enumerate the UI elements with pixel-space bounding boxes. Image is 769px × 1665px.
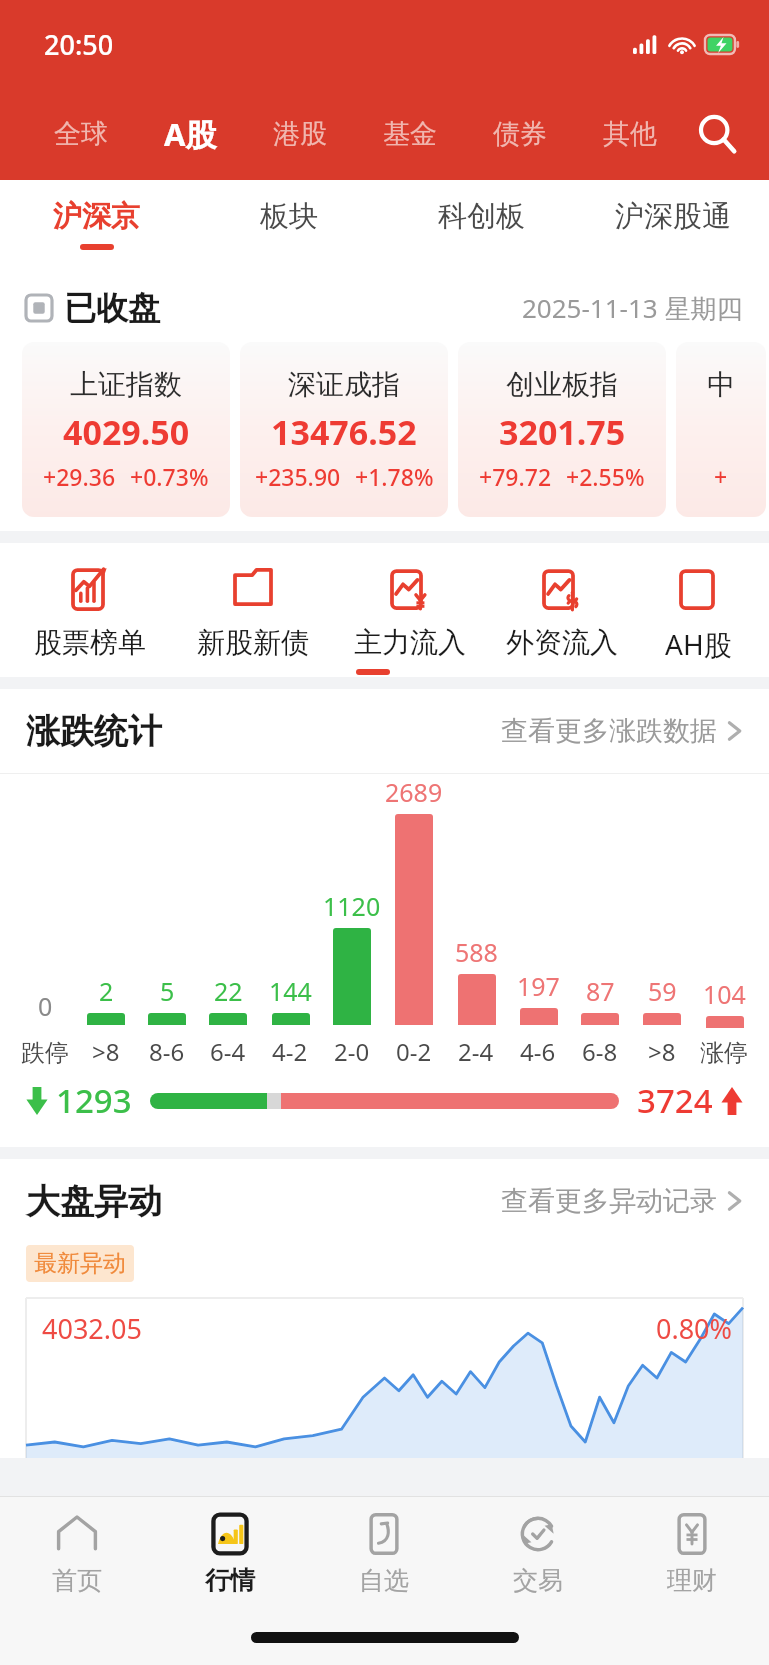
- staticText: 588: [455, 935, 498, 969]
- staticText: 3724: [637, 1078, 713, 1123]
- button[interactable]: 自选: [307, 1497, 461, 1609]
- button[interactable]: 外资流入: [486, 565, 638, 660]
- staticText: 8-6: [149, 1035, 185, 1068]
- staticText: 外资流入: [506, 625, 618, 660]
- staticText: 2: [99, 974, 114, 1008]
- staticText: 1293: [56, 1078, 132, 1123]
- staticText: 自选: [359, 1565, 409, 1596]
- button[interactable]: 港股: [245, 88, 355, 180]
- staticText: 上证指数: [70, 367, 182, 402]
- staticText: 197: [517, 969, 560, 1003]
- staticText: 144: [269, 974, 312, 1008]
- staticText: 查看更多涨跌数据: [501, 714, 717, 748]
- staticText: 行情: [205, 1565, 255, 1596]
- staticText: 其他: [603, 117, 657, 151]
- staticText: 债券: [493, 117, 547, 151]
- staticText: 4-2: [272, 1035, 308, 1068]
- staticText: 1120: [323, 889, 381, 923]
- staticText: 最新异动: [34, 1249, 126, 1278]
- staticText: 沪深京: [53, 198, 140, 235]
- staticText: 股票榜单: [34, 625, 146, 660]
- staticText: 已收盘: [64, 288, 160, 328]
- staticText: 2-4: [458, 1035, 494, 1068]
- staticText: 104: [703, 977, 746, 1011]
- staticText: +29.36: [43, 461, 116, 492]
- staticText: 0.80%: [656, 1310, 733, 1347]
- button[interactable]: 主力流入: [334, 565, 486, 660]
- button[interactable]: 涨跌统计: [26, 689, 743, 773]
- staticText: 基金: [383, 117, 437, 151]
- button[interactable]: 债券: [465, 88, 575, 180]
- staticText: +: [714, 461, 728, 492]
- staticText: 大盘异动: [26, 1180, 162, 1223]
- staticText: 2-0: [334, 1035, 370, 1068]
- staticText: +1.78%: [355, 461, 434, 492]
- staticText: 0: [38, 989, 53, 1023]
- button[interactable]: 创业板指: [458, 342, 666, 517]
- button[interactable]: 中: [676, 342, 766, 517]
- staticText: 新股新债: [197, 625, 309, 660]
- button[interactable]: 全球: [26, 88, 135, 180]
- staticText: 4029.50: [63, 409, 190, 455]
- staticText: 22: [214, 974, 243, 1008]
- staticText: 沪深股通: [615, 198, 731, 235]
- button[interactable]: 深证成指: [240, 342, 448, 517]
- staticText: A股: [164, 113, 217, 155]
- button[interactable]: 4032.05: [26, 1298, 743, 1458]
- button[interactable]: 行情: [153, 1497, 307, 1609]
- staticText: 4032.05: [42, 1310, 142, 1347]
- staticText: 板块: [260, 198, 318, 235]
- button[interactable]: 理财: [615, 1497, 769, 1609]
- staticText: 5: [160, 974, 175, 1008]
- button[interactable]: 交易: [461, 1497, 615, 1609]
- staticText: >8: [648, 1035, 676, 1068]
- button[interactable]: 上证指数: [22, 342, 230, 517]
- staticText: 全球: [54, 117, 108, 151]
- staticText: 查看更多异动记录: [501, 1184, 717, 1218]
- staticText: 涨停: [700, 1038, 748, 1068]
- staticText: +2.55%: [566, 461, 645, 492]
- button[interactable]: 沪深京: [0, 180, 193, 268]
- button[interactable]: Search: [685, 88, 749, 180]
- staticText: 6-4: [210, 1035, 246, 1068]
- staticText: 20:50: [44, 26, 114, 63]
- staticText: 创业板指: [506, 367, 618, 402]
- button[interactable]: AH股: [638, 565, 758, 663]
- staticText: 2689: [385, 775, 443, 809]
- button[interactable]: A股: [135, 88, 245, 180]
- staticText: 理财: [667, 1565, 717, 1596]
- staticText: 13476.52: [271, 409, 417, 455]
- button[interactable]: 板块: [193, 180, 385, 268]
- staticText: 中: [707, 367, 735, 402]
- button[interactable]: 首页: [0, 1497, 153, 1609]
- staticText: 4-6: [520, 1035, 556, 1068]
- staticText: 6-8: [582, 1035, 618, 1068]
- staticText: 59: [648, 974, 677, 1008]
- button[interactable]: 基金: [355, 88, 465, 180]
- staticText: 深证成指: [288, 367, 400, 402]
- button[interactable]: 其他: [575, 88, 685, 180]
- staticText: 涨跌统计: [26, 710, 162, 753]
- button[interactable]: 股票榜单: [8, 565, 171, 660]
- staticText: 首页: [52, 1565, 102, 1596]
- staticText: +235.90: [255, 461, 341, 492]
- staticText: 2025-11-13 星期四: [522, 290, 743, 326]
- button[interactable]: 科创板: [385, 180, 577, 268]
- staticText: 交易: [513, 1565, 563, 1596]
- staticText: 跌停: [21, 1038, 69, 1068]
- button[interactable]: 沪深股通: [577, 180, 769, 268]
- staticText: 科创板: [438, 198, 525, 235]
- staticText: 港股: [273, 117, 327, 151]
- button[interactable]: 大盘异动: [26, 1159, 743, 1243]
- staticText: +79.72: [479, 461, 552, 492]
- staticText: 87: [586, 974, 615, 1008]
- button[interactable]: 新股新债: [171, 565, 334, 660]
- staticText: AH股: [665, 625, 732, 663]
- staticText: 3201.75: [499, 409, 626, 455]
- staticText: 0-2: [396, 1035, 432, 1068]
- staticText: +0.73%: [130, 461, 209, 492]
- staticText: 主力流入: [354, 625, 466, 660]
- staticText: >8: [92, 1035, 120, 1068]
